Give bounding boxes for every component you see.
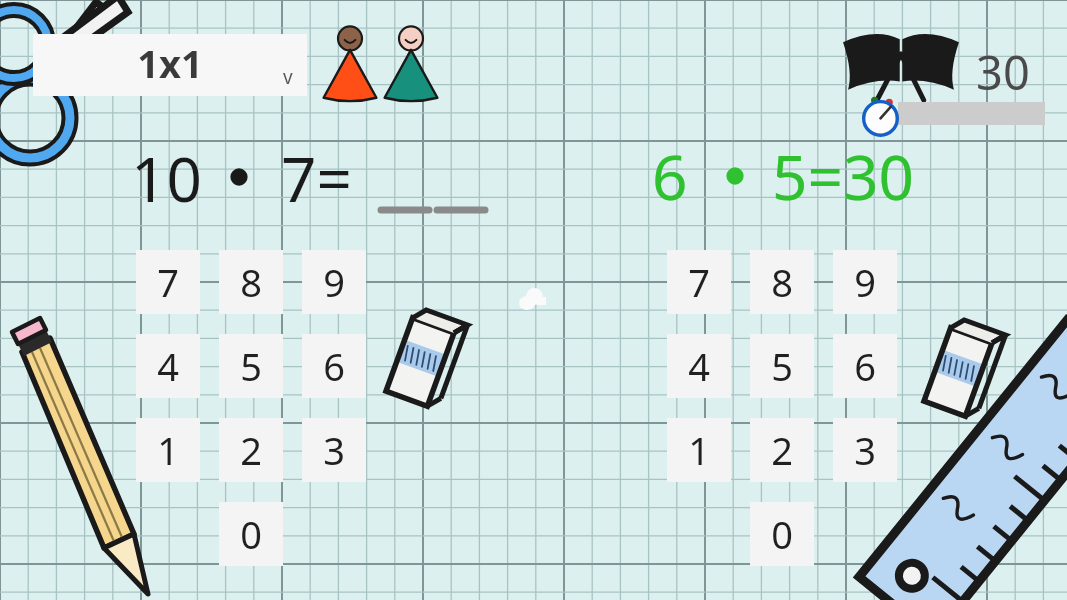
staticText: 2: [771, 424, 793, 476]
button[interactable]: 2: [219, 418, 283, 482]
staticText: 3: [854, 424, 876, 476]
button[interactable]: 3: [833, 418, 897, 482]
staticText: 2: [240, 424, 262, 476]
button[interactable]: 6: [302, 334, 366, 398]
button[interactable]: 8: [750, 250, 814, 314]
button[interactable]: 7: [136, 250, 200, 314]
button[interactable]: 9: [833, 250, 897, 314]
staticText: 30: [976, 40, 1030, 104]
staticText: 4: [688, 340, 710, 392]
button[interactable]: 2: [750, 418, 814, 482]
staticText: 6: [854, 340, 876, 392]
staticText: 5: [771, 340, 793, 392]
staticText: 8: [240, 256, 262, 308]
staticText: 1: [688, 424, 710, 476]
staticText: 9: [854, 256, 876, 308]
staticText: 0: [240, 508, 262, 560]
button[interactable]: 5: [750, 334, 814, 398]
button[interactable]: 4: [667, 334, 731, 398]
staticText: 5: [240, 340, 262, 392]
button[interactable]: 3: [302, 418, 366, 482]
staticText: 10: [131, 136, 202, 220]
button[interactable]: 1: [136, 418, 200, 482]
button[interactable]: 5: [219, 334, 283, 398]
button[interactable]: 0: [219, 502, 283, 566]
staticText: 7: [157, 256, 179, 308]
staticText: 8: [771, 256, 793, 308]
button[interactable]: 9: [302, 250, 366, 314]
staticText: 6: [323, 340, 345, 392]
button[interactable]: 1x1: [33, 34, 307, 96]
button[interactable]: 4: [136, 334, 200, 398]
button[interactable]: 7: [667, 250, 731, 314]
staticText: 7: [688, 256, 710, 308]
button[interactable]: 8: [219, 250, 283, 314]
button[interactable]: 6: [833, 334, 897, 398]
staticText: 1x1: [137, 37, 203, 89]
button[interactable]: 1: [667, 418, 731, 482]
button[interactable]: 0: [750, 502, 814, 566]
staticText: 9: [323, 256, 345, 308]
staticText: 1: [157, 424, 179, 476]
staticText: 4: [157, 340, 179, 392]
staticText: 3: [323, 424, 345, 476]
staticText: 7=: [281, 136, 352, 220]
staticText: 0: [771, 508, 793, 560]
staticText: v: [283, 64, 293, 90]
staticText: 5=30: [772, 134, 914, 218]
staticText: 6: [652, 134, 688, 218]
